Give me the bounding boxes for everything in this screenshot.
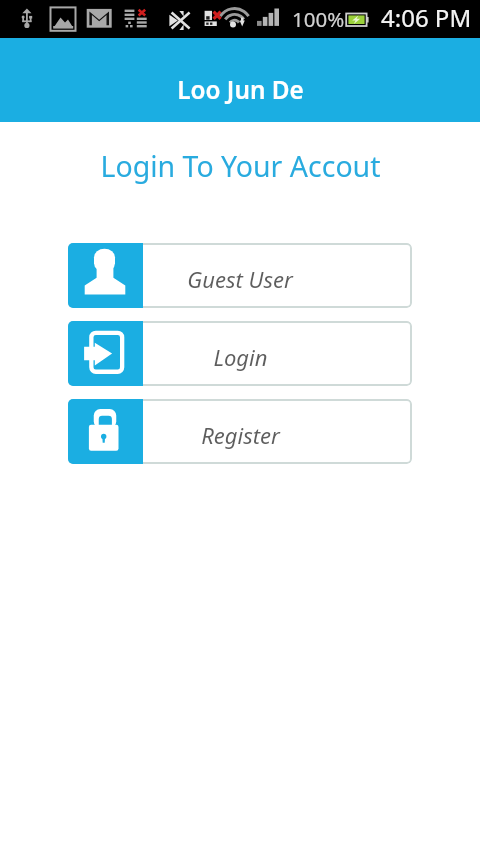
staticText: Login To Your Accout	[100, 147, 381, 186]
staticText: Register	[201, 420, 280, 450]
button[interactable]: Guest User	[68, 243, 412, 308]
staticText: Login	[213, 342, 268, 372]
staticText: 4:06 PM	[381, 1, 472, 34]
staticText: 100%	[292, 5, 345, 33]
button[interactable]: Register	[68, 399, 412, 464]
staticText: Guest User	[187, 264, 293, 294]
staticText: Loo Jun De	[177, 73, 304, 106]
button[interactable]: Login	[68, 321, 412, 386]
